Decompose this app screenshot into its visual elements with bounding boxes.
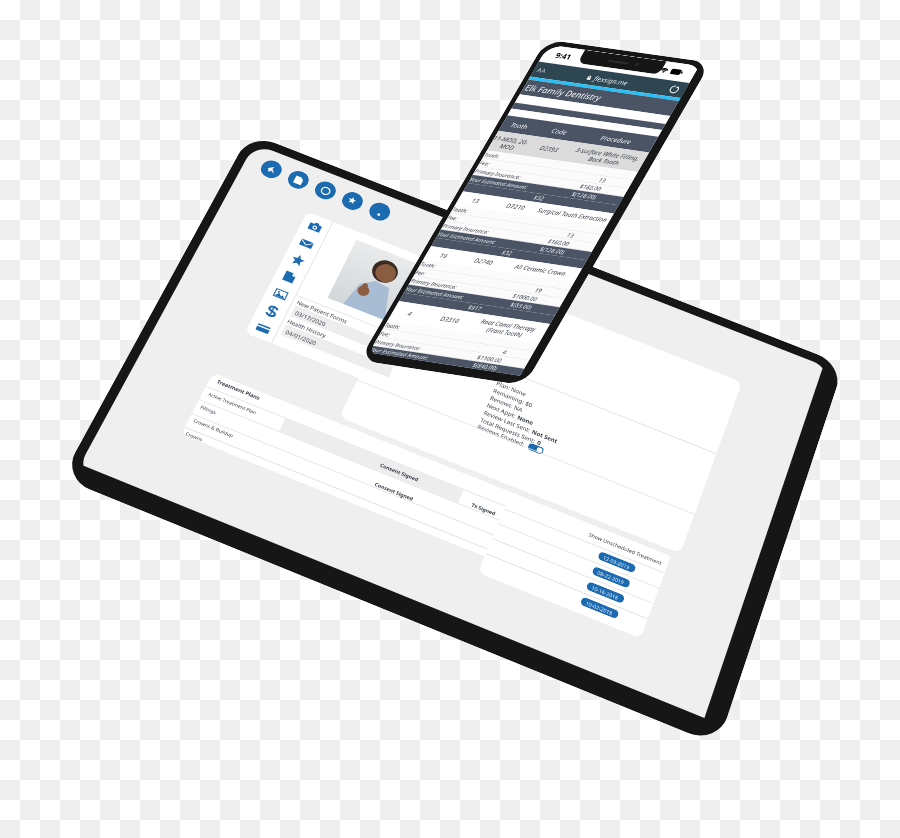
button[interactable]: Fillings bbox=[199, 404, 218, 416]
staticText: Tooth: bbox=[483, 151, 501, 160]
staticText: Tooth: bbox=[383, 322, 402, 331]
staticText: Fee: bbox=[378, 330, 392, 338]
staticText: $(840.00) bbox=[471, 361, 499, 372]
button[interactable]: Forms bbox=[275, 265, 304, 289]
staticText: NA bbox=[513, 403, 524, 413]
button[interactable]: Consent Signed bbox=[379, 461, 420, 483]
staticText: $917 bbox=[466, 304, 484, 313]
button[interactable]: Alerts bbox=[339, 189, 366, 213]
staticText: D7210 bbox=[494, 200, 537, 213]
staticText: Not Sent bbox=[531, 428, 560, 445]
staticText: All Ceramic Crown bbox=[501, 260, 580, 279]
button[interactable]: Billing bbox=[258, 299, 286, 324]
staticText: 13 bbox=[597, 176, 608, 185]
staticText: 13 bbox=[457, 194, 498, 207]
staticText: Your Estimated Amount: bbox=[468, 176, 530, 191]
staticText: Primary Insurance: bbox=[441, 222, 490, 236]
staticText: AA bbox=[536, 66, 548, 74]
staticText: 19 bbox=[533, 287, 544, 295]
staticText: 3-surface White Filling, Back Tooth bbox=[564, 145, 647, 170]
button[interactable]: Back bbox=[257, 158, 285, 181]
button[interactable]: 12-09-2019 bbox=[597, 551, 637, 573]
staticText: Remaining: bbox=[492, 386, 527, 406]
button[interactable]: Tx Signed bbox=[471, 501, 497, 517]
staticText: Primary Insurance: bbox=[473, 167, 522, 181]
staticText: $(128.00) bbox=[538, 245, 566, 257]
staticText: Your Estimated Amount: bbox=[436, 230, 498, 246]
staticText: 0 bbox=[536, 438, 543, 446]
staticText: D3310 bbox=[428, 313, 471, 326]
staticText: Your Estimated Amount: bbox=[369, 346, 431, 361]
staticText: 19 bbox=[425, 249, 466, 262]
button[interactable]: Favourite bbox=[284, 248, 312, 272]
button[interactable]: Mail bbox=[293, 231, 321, 256]
staticText: $0 bbox=[524, 399, 535, 409]
button[interactable]: Active Treatment Plan bbox=[207, 391, 258, 416]
button[interactable]: Card bbox=[249, 316, 277, 341]
staticText: Review Last Sent: bbox=[483, 408, 534, 434]
button[interactable]: Crowns & Buildup bbox=[192, 417, 234, 439]
button[interactable]: Camera bbox=[301, 215, 329, 239]
staticText: Health History bbox=[286, 317, 328, 339]
staticText: Show Unscheduled Treatment bbox=[588, 531, 663, 566]
staticText: Root Canal Therapy (Front Tooth) bbox=[465, 316, 548, 341]
staticText: New Patient Forms bbox=[296, 298, 349, 324]
staticText: Surgical Tooth Extraction bbox=[533, 206, 612, 224]
staticText: 12-09-2019 bbox=[602, 554, 631, 571]
staticText: Code bbox=[538, 124, 581, 138]
staticText: $(83.00) bbox=[508, 301, 534, 312]
button[interactable]: 08-22-2019 bbox=[591, 566, 631, 589]
staticText: 4 bbox=[391, 307, 433, 320]
staticText: $32 bbox=[500, 249, 514, 258]
button[interactable]: Reviews enabled toggle bbox=[527, 442, 545, 455]
staticText: D2393 bbox=[528, 142, 571, 155]
staticText: $1100.00 bbox=[475, 354, 503, 365]
staticText: Reviews Enabled: bbox=[477, 422, 526, 448]
staticText: Total Requests Sent: bbox=[479, 416, 539, 445]
staticText: Fee: bbox=[414, 269, 428, 277]
staticText: Fee: bbox=[478, 159, 492, 167]
button[interactable]: Show Unscheduled Treatment bbox=[588, 531, 663, 566]
staticText: $1000.00 bbox=[510, 292, 539, 303]
staticText: Crowns & Buildup bbox=[192, 417, 234, 439]
staticText: None bbox=[516, 413, 535, 426]
staticText: Tooth: bbox=[451, 206, 470, 215]
staticText: $160.00 bbox=[546, 238, 571, 248]
staticText: Procedure bbox=[576, 130, 656, 149]
staticText: $(128.00) bbox=[570, 190, 598, 201]
staticText: Consent Signed bbox=[379, 461, 420, 483]
staticText: Tooth bbox=[501, 119, 542, 132]
button[interactable]: Consent Signed bbox=[374, 480, 415, 502]
staticText: flexsign.me bbox=[592, 74, 631, 87]
staticText: Fee: bbox=[446, 214, 460, 222]
staticText: Tx Signed bbox=[471, 501, 497, 517]
staticText: Crowns bbox=[185, 431, 204, 442]
staticText: 04/01/2020 bbox=[282, 327, 318, 346]
staticText: Fillings bbox=[199, 404, 218, 416]
staticText: D2740 bbox=[462, 255, 505, 268]
staticText: Your Estimated Amount: bbox=[404, 285, 466, 301]
button[interactable]: 10-02-2018 bbox=[580, 596, 620, 619]
staticText: Elk Family Dentistry bbox=[523, 82, 604, 103]
staticText: $32 bbox=[532, 194, 546, 203]
staticText: Treatment Plans bbox=[215, 378, 261, 402]
staticText: 4 bbox=[500, 348, 508, 357]
button[interactable]: Images bbox=[266, 282, 295, 306]
staticText: Tooth: bbox=[419, 260, 438, 269]
staticText: 03/17/2020 bbox=[291, 308, 328, 327]
button[interactable]: Help bbox=[366, 200, 393, 223]
staticText: 10-16-2018 bbox=[591, 584, 620, 601]
staticText: Active Treatment Plan bbox=[207, 391, 258, 416]
staticText: Consent Signed bbox=[374, 480, 415, 502]
button[interactable]: Crowns bbox=[185, 431, 204, 442]
button[interactable]: 10-16-2018 bbox=[585, 581, 625, 604]
button[interactable]: Documents bbox=[284, 168, 312, 192]
button[interactable]: Refresh bbox=[312, 179, 339, 202]
staticText: 10-02-2018 bbox=[585, 599, 614, 616]
staticText: None bbox=[510, 385, 528, 397]
staticText: 11-MOD, 20- MOD bbox=[488, 134, 534, 153]
staticText: Renews: bbox=[489, 394, 516, 410]
staticText: 9:41 bbox=[554, 50, 574, 61]
staticText: Plan: bbox=[495, 379, 513, 391]
staticText: Next Appt: bbox=[486, 401, 519, 420]
